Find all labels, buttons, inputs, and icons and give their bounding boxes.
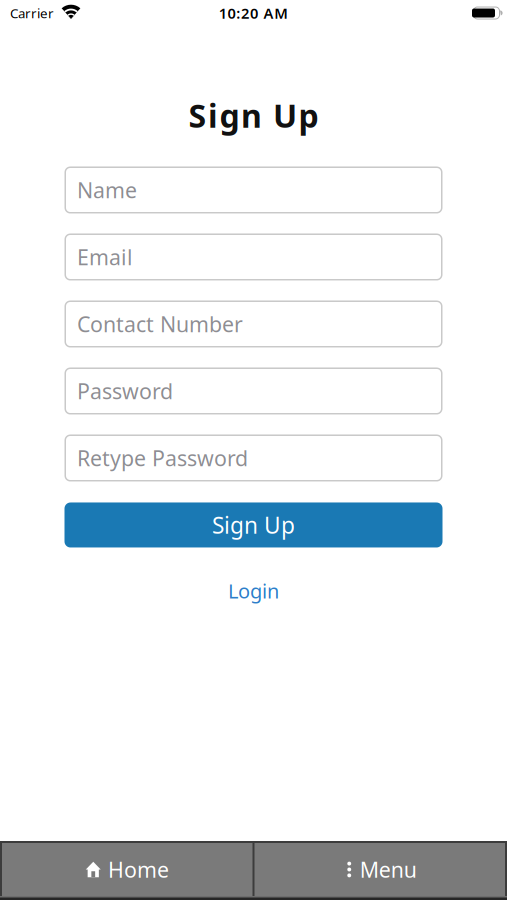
button[interactable]: Password	[64, 367, 442, 414]
button[interactable]: Contact Number	[64, 300, 442, 347]
staticText: Sign Up	[212, 510, 295, 540]
staticText: 10:20 AM	[219, 3, 288, 23]
staticText: Email	[77, 243, 133, 271]
staticText: Password	[77, 377, 173, 405]
staticText: Sign Up	[188, 94, 318, 136]
button[interactable]: Menu	[254, 843, 505, 896]
staticText: Retype Password	[77, 444, 248, 472]
button[interactable]: Home	[2, 843, 252, 896]
button[interactable]: Retype Password	[64, 434, 442, 481]
button[interactable]: Sign Up	[64, 502, 442, 547]
button[interactable]: Login	[228, 577, 279, 604]
staticText: Menu	[360, 855, 417, 884]
staticText: Carrier	[10, 4, 54, 22]
staticText: Contact Number	[77, 310, 243, 338]
staticText: Home	[108, 855, 169, 884]
button[interactable]: Email	[64, 233, 442, 280]
staticText: Name	[77, 176, 137, 204]
staticText: Login	[228, 577, 279, 604]
button[interactable]: Name	[64, 166, 442, 213]
